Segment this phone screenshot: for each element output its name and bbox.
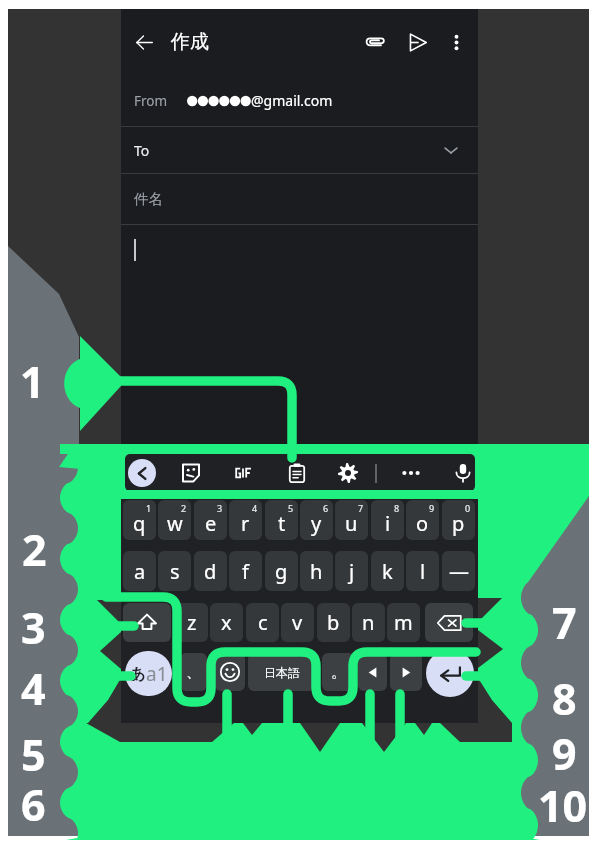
staticText: From (134, 92, 168, 110)
button[interactable]: 0 (442, 500, 475, 540)
button[interactable]: Enter (426, 649, 474, 697)
button[interactable]: 1 (123, 500, 156, 540)
staticText: w (167, 510, 183, 537)
staticText: 9 (429, 502, 435, 514)
staticText: 5 (21, 725, 46, 784)
staticText: i (385, 510, 391, 537)
button[interactable]: GIF (231, 459, 259, 487)
staticText: a (134, 558, 146, 585)
button[interactable]: h (300, 551, 333, 591)
button[interactable]: 8 (371, 500, 404, 540)
button[interactable]: To (121, 127, 478, 173)
button[interactable]: x (210, 603, 243, 642)
button[interactable]: s (158, 551, 191, 591)
staticText: 1 (146, 502, 152, 514)
staticText: 7 (552, 593, 577, 652)
button[interactable] (123, 603, 171, 642)
staticText: 、 (186, 663, 201, 682)
button[interactable]: 6 (300, 500, 333, 540)
button[interactable]: g (265, 551, 298, 591)
button[interactable] (358, 653, 387, 691)
staticText: 作成 (171, 30, 209, 54)
staticText: s (170, 558, 180, 585)
staticText: 3 (21, 598, 46, 657)
button[interactable]: 日本語 (248, 653, 315, 691)
staticText: 2 (181, 502, 187, 514)
button[interactable]: 。 (322, 653, 355, 691)
button[interactable]: Back (128, 26, 160, 58)
staticText: m (394, 609, 413, 636)
staticText: — (449, 558, 469, 585)
button[interactable]: Stickers (177, 459, 205, 487)
staticText: 8 (552, 669, 577, 728)
staticText: 4 (252, 502, 258, 514)
button[interactable]: d (194, 551, 227, 591)
staticText: 9 (552, 724, 577, 783)
button[interactable]: 9 (406, 500, 439, 540)
staticText: j (349, 558, 355, 585)
staticText: n (362, 609, 375, 636)
button[interactable]: a (123, 551, 156, 591)
button[interactable] (215, 653, 245, 691)
staticText: y (311, 510, 322, 537)
staticText: f (242, 558, 249, 585)
staticText: 8 (394, 502, 400, 514)
staticText: @gmail.com (251, 91, 333, 110)
button[interactable]: 4 (229, 500, 262, 540)
staticText: 日本語 (264, 665, 300, 680)
staticText: a1 (146, 661, 168, 687)
staticText: r (241, 510, 250, 537)
button[interactable]: Clipboard (283, 459, 311, 487)
button[interactable]: Settings (334, 459, 362, 487)
button[interactable]: 件名 (121, 174, 478, 224)
button[interactable]: 2 (158, 500, 191, 540)
staticText: 0 (465, 502, 471, 514)
button[interactable]: 5 (265, 500, 298, 540)
button[interactable]: Send (401, 26, 433, 58)
button[interactable]: More options (441, 27, 471, 57)
button[interactable]: 7 (335, 500, 368, 540)
button[interactable]: l (406, 551, 439, 591)
staticText: 7 (358, 502, 364, 514)
button[interactable]: v (281, 603, 314, 642)
button[interactable]: あ (125, 651, 172, 696)
button[interactable]: From (121, 75, 478, 126)
button[interactable]: j (335, 551, 368, 591)
staticText: 6 (21, 775, 46, 834)
staticText: k (382, 558, 393, 585)
staticText: 1 (20, 352, 45, 411)
staticText: u (345, 510, 358, 537)
button[interactable] (121, 225, 478, 455)
button[interactable]: Expand recipients (436, 135, 466, 165)
button[interactable] (425, 603, 473, 642)
staticText: l (420, 558, 426, 585)
staticText: b (327, 609, 340, 636)
button[interactable]: 3 (194, 500, 227, 540)
button[interactable]: Attach file (359, 26, 391, 58)
staticText: v (292, 609, 303, 636)
button[interactable]: Voice input (449, 459, 475, 487)
staticText: z (187, 609, 197, 636)
button[interactable]: c (246, 603, 279, 642)
staticText: 件名 (134, 190, 163, 208)
staticText: o (416, 510, 429, 537)
staticText: d (204, 558, 217, 585)
button[interactable]: f (229, 551, 262, 591)
staticText: あ (130, 665, 146, 684)
staticText: g (275, 558, 288, 585)
button[interactable]: b (317, 603, 350, 642)
button[interactable]: z (175, 603, 208, 642)
button[interactable]: k (371, 551, 404, 591)
staticText: 2 (22, 520, 47, 579)
staticText: t (278, 510, 286, 537)
button[interactable]: — (442, 551, 475, 591)
button[interactable] (390, 653, 422, 691)
staticText: 5 (288, 502, 294, 514)
button[interactable]: m (387, 603, 420, 642)
button[interactable]: 、 (180, 653, 207, 691)
button[interactable]: n (352, 603, 385, 642)
button[interactable]: Close toolbar (128, 459, 156, 487)
staticText: e (205, 510, 217, 537)
staticText: To (134, 141, 150, 160)
button[interactable]: More (397, 459, 425, 487)
